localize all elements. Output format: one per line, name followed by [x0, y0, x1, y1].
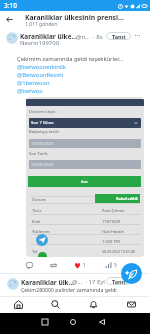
button[interactable]: Retweet [49, 261, 58, 270]
staticText: 3:10 [4, 1, 17, 10]
staticText: 1.011 gönderi [25, 21, 58, 28]
button[interactable]: Tanıt [106, 277, 131, 285]
button[interactable]: Like [74, 261, 86, 270]
staticText: @BetwoonResmi [17, 71, 64, 79]
staticText: Kod: [32, 219, 41, 224]
staticText: Karanliklar ülk... [21, 278, 75, 287]
staticText: @1betwoon [17, 79, 50, 87]
button[interactable]: Ara [28, 176, 141, 187]
button[interactable]: Home [0, 296, 37, 313]
staticText: Türü: [32, 208, 42, 213]
button[interactable]: Compose new post [121, 263, 142, 284]
staticText: Nesrin199700 [20, 39, 60, 47]
button[interactable]: Tanıt [106, 32, 131, 40]
button[interactable]: Son 7 Güne [29, 118, 141, 128]
button[interactable]: Messages [112, 296, 150, 313]
staticText: @betwoonetkinlik [17, 63, 66, 71]
staticText: Çekim280000 paliniler zamanında geldi [21, 286, 117, 293]
staticText: Çekimim zamanında geldi teşekkürler... [17, 55, 124, 63]
button[interactable]: More options [132, 30, 143, 41]
staticText: Başlangıç tarihi [29, 129, 60, 135]
staticText: Ara [81, 179, 88, 185]
staticText: @n... · 8s [76, 33, 103, 41]
staticText: Yüklenen: [32, 229, 51, 234]
staticText: 13/09/2023 [31, 141, 54, 147]
staticText: Tanıt [112, 278, 126, 285]
staticText: 11873039 [102, 219, 121, 224]
staticText: 1 [83, 262, 86, 269]
staticText: @betwoo [17, 87, 43, 95]
staticText: @... · 17 Eyl [72, 278, 105, 286]
staticText: 20/09/2023 [31, 162, 54, 168]
staticText: Kabul edildi [116, 196, 138, 201]
staticText: Tanıt [112, 33, 126, 40]
staticText: 1 000 TRY [102, 239, 121, 244]
staticText: Son 7 Güne [31, 120, 54, 126]
staticText: Hızlı Havale [102, 229, 124, 234]
staticText: Son Tarih: [29, 151, 49, 157]
staticText: Karanliklar ülkesinin prensi... [25, 13, 124, 22]
staticText: Durum: [32, 197, 47, 202]
button[interactable]: Reply [25, 261, 34, 270]
staticText: Tel: [32, 249, 39, 254]
staticText: Dönemi seçin: [29, 109, 57, 115]
button[interactable]: Views [105, 261, 117, 270]
button[interactable]: Notifications [74, 296, 112, 313]
button[interactable]: Back [3, 13, 16, 26]
staticText: Karanliklar ülke... [20, 32, 77, 41]
button[interactable]: Search [37, 296, 74, 313]
staticText: 5 [114, 262, 117, 269]
staticText: 28.09.2023 10:07:08 [102, 249, 135, 254]
staticText: Para Çekme [102, 208, 125, 213]
